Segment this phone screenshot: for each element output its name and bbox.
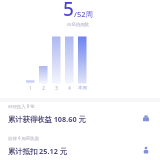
staticText: 已坚持周数	[67, 22, 89, 28]
staticText: 本周	[78, 85, 87, 91]
staticText: 自律 4 周获奖励	[8, 135, 40, 141]
staticText: 4	[68, 85, 71, 91]
staticText: 3	[55, 85, 58, 91]
button[interactable]: 已经投入 6 笔	[0, 100, 160, 126]
staticText: /52周	[74, 9, 93, 19]
staticText: 2	[42, 85, 45, 91]
other: Discount	[142, 146, 150, 154]
staticText: 1	[29, 85, 32, 91]
staticText: 累计抵扣 25.12 元	[8, 146, 68, 156]
button[interactable]: 自律 4 周获奖励	[0, 132, 160, 158]
staticText: 累计获得收益 108.60 元	[8, 114, 86, 124]
staticText: 已经投入 6 笔	[8, 103, 35, 109]
staticText: 5	[63, 0, 74, 22]
other: Earnings	[142, 114, 150, 122]
